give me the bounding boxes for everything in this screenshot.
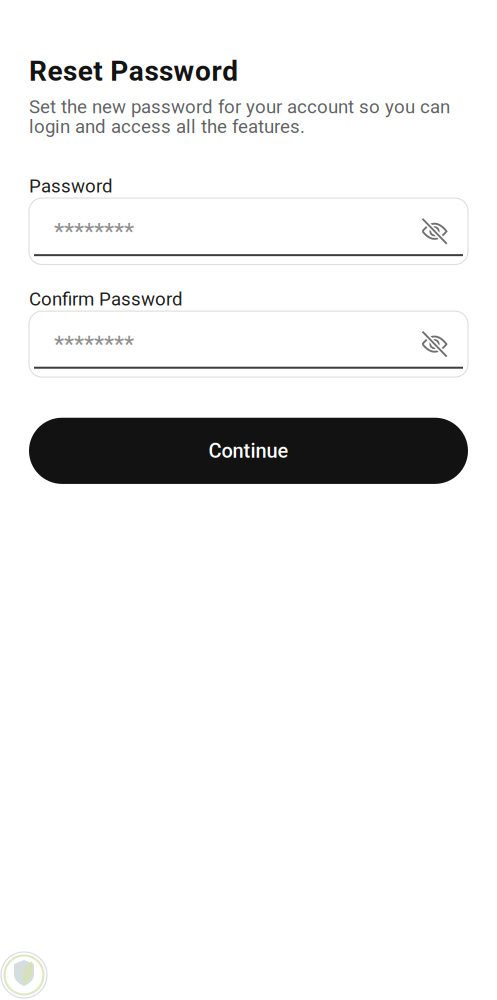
staticText: login and access all the features. [29,116,305,138]
staticText: ******** [54,218,134,245]
staticText: Set the new password for your account so… [29,96,450,118]
button[interactable]: Password [29,198,468,264]
staticText: ******** [54,331,134,357]
button[interactable]: Continue [29,418,468,484]
staticText: Reset Password [29,55,238,88]
staticText: Confirm Password [29,288,183,310]
button[interactable]: Show confirm password [418,326,451,363]
button[interactable]: Confirm Password [29,311,468,377]
button[interactable]: Show password [418,213,451,250]
staticText: Continue [208,439,288,462]
staticText: Password [29,175,113,197]
